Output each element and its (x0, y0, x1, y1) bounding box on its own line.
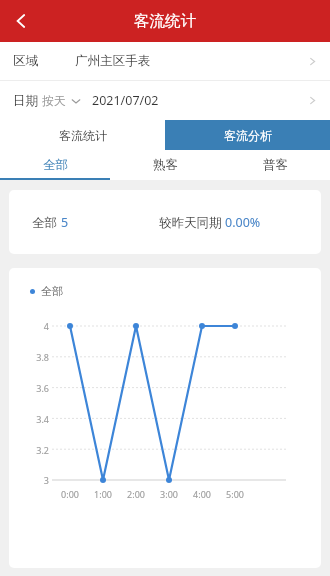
staticText: 2:00 (120, 488, 152, 500)
staticText: 客流统计 (59, 128, 107, 143)
button[interactable]: Back (0, 0, 42, 42)
staticText: 0:00 (54, 488, 86, 500)
staticText: 3.8 (17, 351, 49, 363)
button[interactable]: 普客 (220, 150, 330, 180)
staticText: 客流统计 (134, 11, 196, 31)
button[interactable]: 区域 (0, 42, 330, 80)
button[interactable]: 全部 (0, 150, 110, 180)
staticText: 全部 (43, 157, 68, 173)
staticText: 熟客 (153, 157, 178, 173)
staticText: 3.2 (17, 444, 49, 456)
staticText: 日期 (13, 93, 38, 109)
staticText: 3.4 (17, 413, 49, 425)
button[interactable]: 熟客 (110, 150, 220, 180)
staticText: 4:00 (186, 488, 218, 500)
staticText: 4 (17, 320, 49, 332)
staticText: 3 (17, 474, 49, 486)
staticText: 区域 (13, 53, 38, 69)
button[interactable]: 客流分析 (165, 120, 330, 150)
staticText: 客流分析 (224, 128, 272, 143)
staticText: 较昨天同期 (159, 214, 225, 231)
button[interactable]: 日期 (0, 81, 330, 120)
button[interactable]: 客流统计 (0, 120, 165, 150)
staticText: 1:00 (87, 488, 119, 500)
staticText: 3:00 (153, 488, 185, 500)
staticText: 2021/07/02 (92, 92, 159, 109)
staticText: 普客 (263, 157, 288, 173)
staticText: 按天 (42, 93, 66, 108)
staticText: 全部 (32, 214, 61, 231)
staticText: 全部 (41, 284, 63, 298)
staticText: 5 (61, 214, 69, 231)
staticText: 0.00% (225, 214, 261, 231)
staticText: 5:00 (219, 488, 251, 500)
staticText: 广州主区手表 (75, 53, 150, 69)
staticText: 3.6 (17, 382, 49, 394)
